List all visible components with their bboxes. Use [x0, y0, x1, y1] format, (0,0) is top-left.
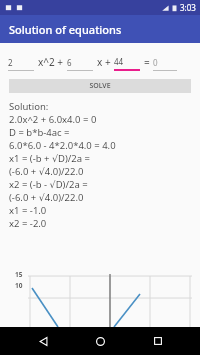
staticText: x^2 + — [38, 55, 64, 69]
staticText: 2.0x^2 + 6.0x4.0 = 0 — [9, 113, 97, 126]
staticText: Solution: — [9, 100, 49, 113]
button[interactable]: 2 — [8, 57, 34, 71]
staticText: 10 — [15, 281, 23, 290]
button[interactable]: 0 — [153, 57, 177, 71]
staticText: 6 — [67, 57, 72, 68]
staticText: Solution of equations — [9, 22, 122, 37]
button[interactable]: SOLVE — [9, 79, 191, 93]
staticText: 0 — [153, 57, 158, 68]
staticText: 3:03 — [180, 2, 196, 13]
staticText: D = b*b-4ac = — [9, 126, 70, 139]
button[interactable]: Back — [28, 327, 58, 355]
button[interactable]: 44 — [114, 56, 140, 71]
staticText: x2 = -2.0 — [9, 217, 47, 230]
button[interactable]: Home — [85, 327, 115, 355]
staticText: x2 = (-b - √D)/2a = — [9, 178, 88, 191]
staticText: = — [144, 55, 150, 69]
staticText: SOLVE — [89, 81, 111, 91]
staticText: 44 — [114, 56, 124, 67]
staticText: x + — [97, 55, 111, 69]
staticText: 15 — [15, 270, 23, 279]
staticText: 6.0*6.0 - 4*2.0*4.0 = 4.0 — [9, 139, 116, 152]
staticText: (-6.0 + √4.0)/22.0 — [9, 165, 84, 178]
staticText: x1 = -1.0 — [9, 204, 47, 217]
button[interactable]: 6 — [67, 57, 93, 71]
staticText: 2 — [8, 57, 13, 68]
button[interactable]: Recent apps — [143, 327, 173, 355]
staticText: x1 = (-b + √D)/2a = — [9, 152, 90, 165]
staticText: (-6.0 + √4.0)/22.0 — [9, 191, 84, 204]
